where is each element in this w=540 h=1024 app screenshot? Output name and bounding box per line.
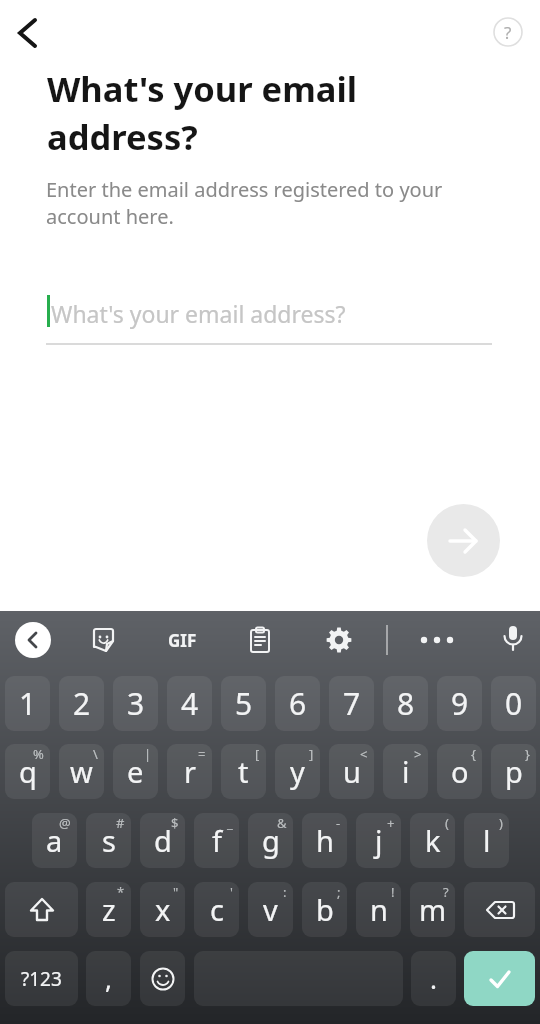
staticText: o [451,752,469,791]
button[interactable] [246,626,274,654]
staticText: * [117,883,125,901]
button[interactable]: 2 [59,676,104,731]
button[interactable]: x [140,882,185,937]
button[interactable]: b [302,882,347,937]
staticText: \ [93,745,98,763]
staticText: 4 [181,683,199,724]
button[interactable]: q [5,744,50,799]
button[interactable] [91,626,119,654]
staticText: g [262,821,280,860]
staticText: } [525,745,530,763]
button[interactable]: 3 [113,676,158,731]
staticText: What's your email address? [51,298,346,329]
button[interactable]: 7 [329,676,374,731]
staticText: q [19,752,37,791]
staticText: r [184,752,196,791]
button[interactable]: . [411,951,456,1006]
button[interactable] [427,504,500,577]
staticText: ? [504,21,512,44]
button[interactable]: What's your email address? [46,288,492,346]
staticText: What's your email address? [47,65,358,160]
button[interactable]: c [194,882,239,937]
button[interactable]: 5 [221,676,266,731]
staticText: [ [255,745,260,763]
button[interactable] [498,624,528,654]
staticText: ( [445,814,449,832]
staticText: y [290,752,305,791]
button[interactable]: d [140,813,185,868]
button[interactable]: h [302,813,347,868]
button[interactable] [140,951,185,1006]
staticText: @ [59,814,71,832]
button[interactable]: a [32,813,77,868]
button[interactable]: GIF [160,626,204,654]
button[interactable] [464,951,535,1006]
button[interactable]: 0 [491,676,536,731]
staticText: a [46,821,63,860]
staticText: 3 [127,683,145,724]
staticText: GIF [168,629,197,652]
button[interactable]: j [356,813,401,868]
button[interactable]: 8 [383,676,428,731]
staticText: # [116,814,125,832]
button[interactable]: f [194,813,239,868]
button[interactable] [5,882,78,937]
button[interactable]: 4 [167,676,212,731]
button[interactable]: l [464,813,509,868]
button[interactable]: s [86,813,131,868]
button[interactable]: z [86,882,131,937]
button[interactable]: u [329,744,374,799]
button[interactable]: t [221,744,266,799]
button[interactable]: i [383,744,428,799]
staticText: < [360,745,368,763]
staticText: 2 [73,683,91,724]
button[interactable] [464,882,535,937]
button[interactable] [325,626,353,654]
staticText: . [430,961,437,996]
button[interactable]: k [410,813,455,868]
staticText: { [471,745,476,763]
button[interactable]: , [86,951,131,1006]
staticText: k [425,821,441,860]
staticText: _ [227,814,233,832]
button[interactable]: g [248,813,293,868]
button[interactable]: e [113,744,158,799]
button[interactable]: 1 [5,676,50,731]
button[interactable]: v [248,882,293,937]
staticText: 6 [289,683,307,724]
staticText: > [414,745,422,763]
staticText: & [277,814,287,832]
staticText: v [263,890,278,929]
staticText: 7 [343,683,361,724]
staticText: u [343,752,361,791]
staticText: 1 [19,683,37,724]
staticText: ? [443,883,449,901]
staticText: ) [499,814,503,832]
staticText: ; [337,883,341,901]
button[interactable]: n [356,882,401,937]
staticText: s [102,821,116,860]
button[interactable]: m [410,882,455,937]
staticText: h [316,821,334,860]
staticText: l [483,821,491,860]
button[interactable]: r [167,744,212,799]
button[interactable]: ?123 [5,951,78,1006]
staticText: " [173,883,179,901]
staticText: : [283,883,287,901]
button[interactable]: ? [493,17,523,47]
button[interactable]: 6 [275,676,320,731]
staticText: $ [171,814,179,832]
button[interactable]: y [275,744,320,799]
staticText: j [375,821,383,860]
staticText: x [155,890,171,929]
button[interactable] [8,14,46,52]
button[interactable]: p [491,744,536,799]
button[interactable]: w [59,744,104,799]
button[interactable] [416,626,460,654]
button[interactable]: o [437,744,482,799]
staticText: , [105,961,112,996]
button[interactable]: 9 [437,676,482,731]
button[interactable] [15,622,51,658]
staticText: e [127,752,144,791]
